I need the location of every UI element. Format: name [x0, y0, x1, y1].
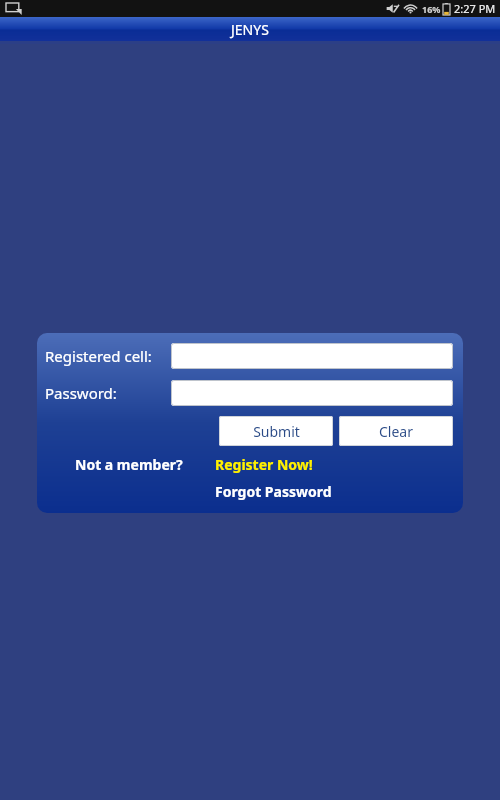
button[interactable]: Clear — [339, 416, 453, 446]
button[interactable]: Submit — [219, 416, 333, 446]
button[interactable]: Forgot Password — [215, 482, 332, 501]
staticText: JENYS — [231, 20, 269, 39]
staticText: Submit — [253, 422, 300, 441]
staticText: 16% — [422, 3, 441, 15]
staticText: Forgot Password — [215, 482, 332, 501]
button[interactable]: Register Now! — [215, 455, 313, 474]
staticText: Password: — [45, 383, 171, 403]
staticText: Register Now! — [215, 455, 313, 474]
staticText: Not a member? — [75, 455, 183, 474]
staticText: 2:27 PM — [454, 1, 496, 16]
button[interactable]: Text input — [171, 380, 453, 406]
staticText: Clear — [379, 422, 413, 441]
button[interactable]: Text input — [171, 343, 453, 369]
staticText: Registered cell: — [45, 346, 171, 366]
